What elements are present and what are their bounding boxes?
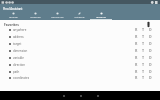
- button[interactable]: T: [140, 61, 147, 68]
- staticText: dimension: [13, 49, 28, 53]
- staticText: anywhere: [13, 28, 27, 32]
- staticText: D: [149, 75, 152, 80]
- button[interactable]: T: [140, 33, 147, 40]
- staticText: R: [135, 69, 138, 74]
- button[interactable]: R: [133, 54, 140, 61]
- button[interactable]: address: [0, 33, 160, 40]
- staticText: D: [149, 48, 152, 53]
- button[interactable]: R: [133, 40, 140, 47]
- button[interactable]: SETTINGS: [90, 11, 112, 20]
- staticText: D: [149, 69, 152, 74]
- button[interactable]: target: [0, 40, 160, 47]
- button[interactable]: T: [140, 68, 147, 75]
- staticText: R: [135, 75, 138, 80]
- button[interactable]: Recents: [89, 91, 106, 100]
- staticText: D: [149, 55, 152, 60]
- button[interactable]: R: [133, 26, 140, 33]
- staticText: T: [142, 27, 145, 32]
- button[interactable]: R: [133, 47, 140, 54]
- button[interactable]: direction: [0, 61, 160, 68]
- button[interactable]: T: [140, 54, 147, 61]
- staticText: R: [135, 34, 138, 39]
- button[interactable]: path: [0, 68, 160, 75]
- button[interactable]: T: [140, 40, 147, 47]
- button[interactable]: BROWSE: [2, 11, 24, 20]
- button[interactable]: More options: [145, 21, 152, 28]
- staticText: SETTINGS: [96, 16, 106, 19]
- button[interactable]: T: [140, 26, 147, 33]
- staticText: T: [142, 69, 145, 74]
- button[interactable]: Home: [72, 91, 89, 100]
- staticText: T: [142, 34, 145, 39]
- staticText: D: [149, 34, 152, 39]
- button[interactable]: D: [147, 40, 154, 47]
- button[interactable]: D: [147, 68, 154, 75]
- button[interactable]: dimension: [0, 47, 160, 54]
- button[interactable]: T: [140, 74, 147, 81]
- staticText: Final Assistant: [3, 7, 23, 11]
- staticText: address: [13, 35, 24, 39]
- button[interactable]: D: [147, 61, 154, 68]
- staticText: target: [13, 42, 22, 46]
- button[interactable]: T: [140, 47, 147, 54]
- staticText: R: [135, 48, 138, 53]
- button[interactable]: R: [133, 33, 140, 40]
- staticText: T: [142, 55, 145, 60]
- staticText: R: [135, 55, 138, 60]
- staticText: SCHEDULE: [30, 16, 41, 19]
- button[interactable]: R: [133, 61, 140, 68]
- staticText: coordinates: [13, 76, 30, 80]
- staticText: path: [13, 70, 20, 74]
- staticText: D: [149, 41, 152, 46]
- staticText: R: [135, 41, 138, 46]
- staticText: T: [142, 62, 145, 67]
- button[interactable]: coordinates: [0, 74, 160, 81]
- staticText: T: [142, 75, 145, 80]
- staticText: R: [135, 27, 138, 32]
- staticText: T: [142, 41, 145, 46]
- staticText: D: [149, 27, 152, 32]
- staticText: Favorites: [4, 23, 19, 27]
- staticText: D: [149, 62, 152, 67]
- staticText: DICTIONARY: [51, 16, 64, 19]
- staticText: BROWSE: [9, 16, 18, 19]
- button[interactable]: Back: [55, 91, 72, 100]
- button[interactable]: D: [147, 47, 154, 54]
- button[interactable]: COMPOSE: [68, 11, 90, 20]
- staticText: variable: [13, 56, 24, 60]
- button[interactable]: DICTIONARY: [46, 11, 68, 20]
- button[interactable]: D: [147, 26, 154, 33]
- button[interactable]: D: [147, 33, 154, 40]
- button[interactable]: D: [147, 74, 154, 81]
- button[interactable]: variable: [0, 54, 160, 61]
- staticText: COMPOSE: [74, 16, 85, 19]
- button[interactable]: D: [147, 54, 154, 61]
- staticText: direction: [13, 63, 26, 67]
- button[interactable]: R: [133, 68, 140, 75]
- staticText: R: [135, 62, 138, 67]
- button[interactable]: SCHEDULE: [24, 11, 46, 20]
- staticText: T: [142, 48, 145, 53]
- button[interactable]: R: [133, 74, 140, 81]
- button[interactable]: anywhere: [0, 26, 160, 33]
